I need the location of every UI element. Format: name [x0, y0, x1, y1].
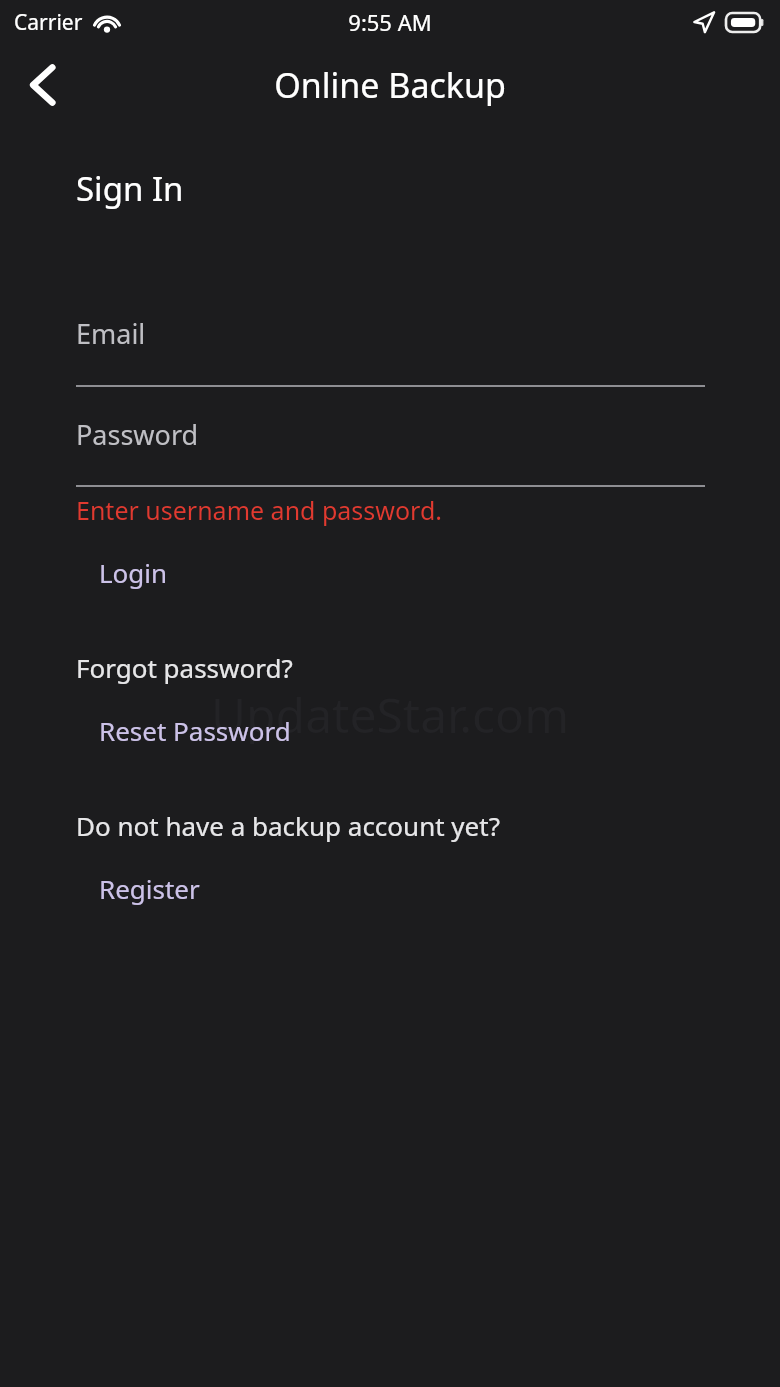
button[interactable]: Password — [76, 416, 705, 453]
button[interactable]: Email — [76, 315, 705, 352]
staticText: Register — [99, 871, 200, 906]
staticText: Password — [76, 416, 199, 453]
staticText: Reset Password — [99, 713, 291, 748]
button[interactable]: Register — [99, 869, 200, 908]
staticText: Email — [76, 315, 146, 352]
staticText: Do not have a backup account yet? — [76, 808, 500, 843]
button[interactable]: Back — [12, 54, 74, 116]
staticText: Enter username and password. — [76, 493, 442, 527]
staticText: Login — [99, 555, 168, 590]
staticText: UpdateStar.com — [211, 682, 570, 747]
button[interactable]: Reset Password — [99, 711, 291, 750]
button[interactable]: Login — [99, 553, 168, 592]
staticText: Online Backup — [274, 62, 506, 108]
staticText: Carrier — [14, 8, 83, 37]
staticText: Forgot password? — [76, 650, 293, 685]
staticText: Sign In — [76, 166, 184, 211]
staticText: 9:55 AM — [348, 7, 432, 37]
